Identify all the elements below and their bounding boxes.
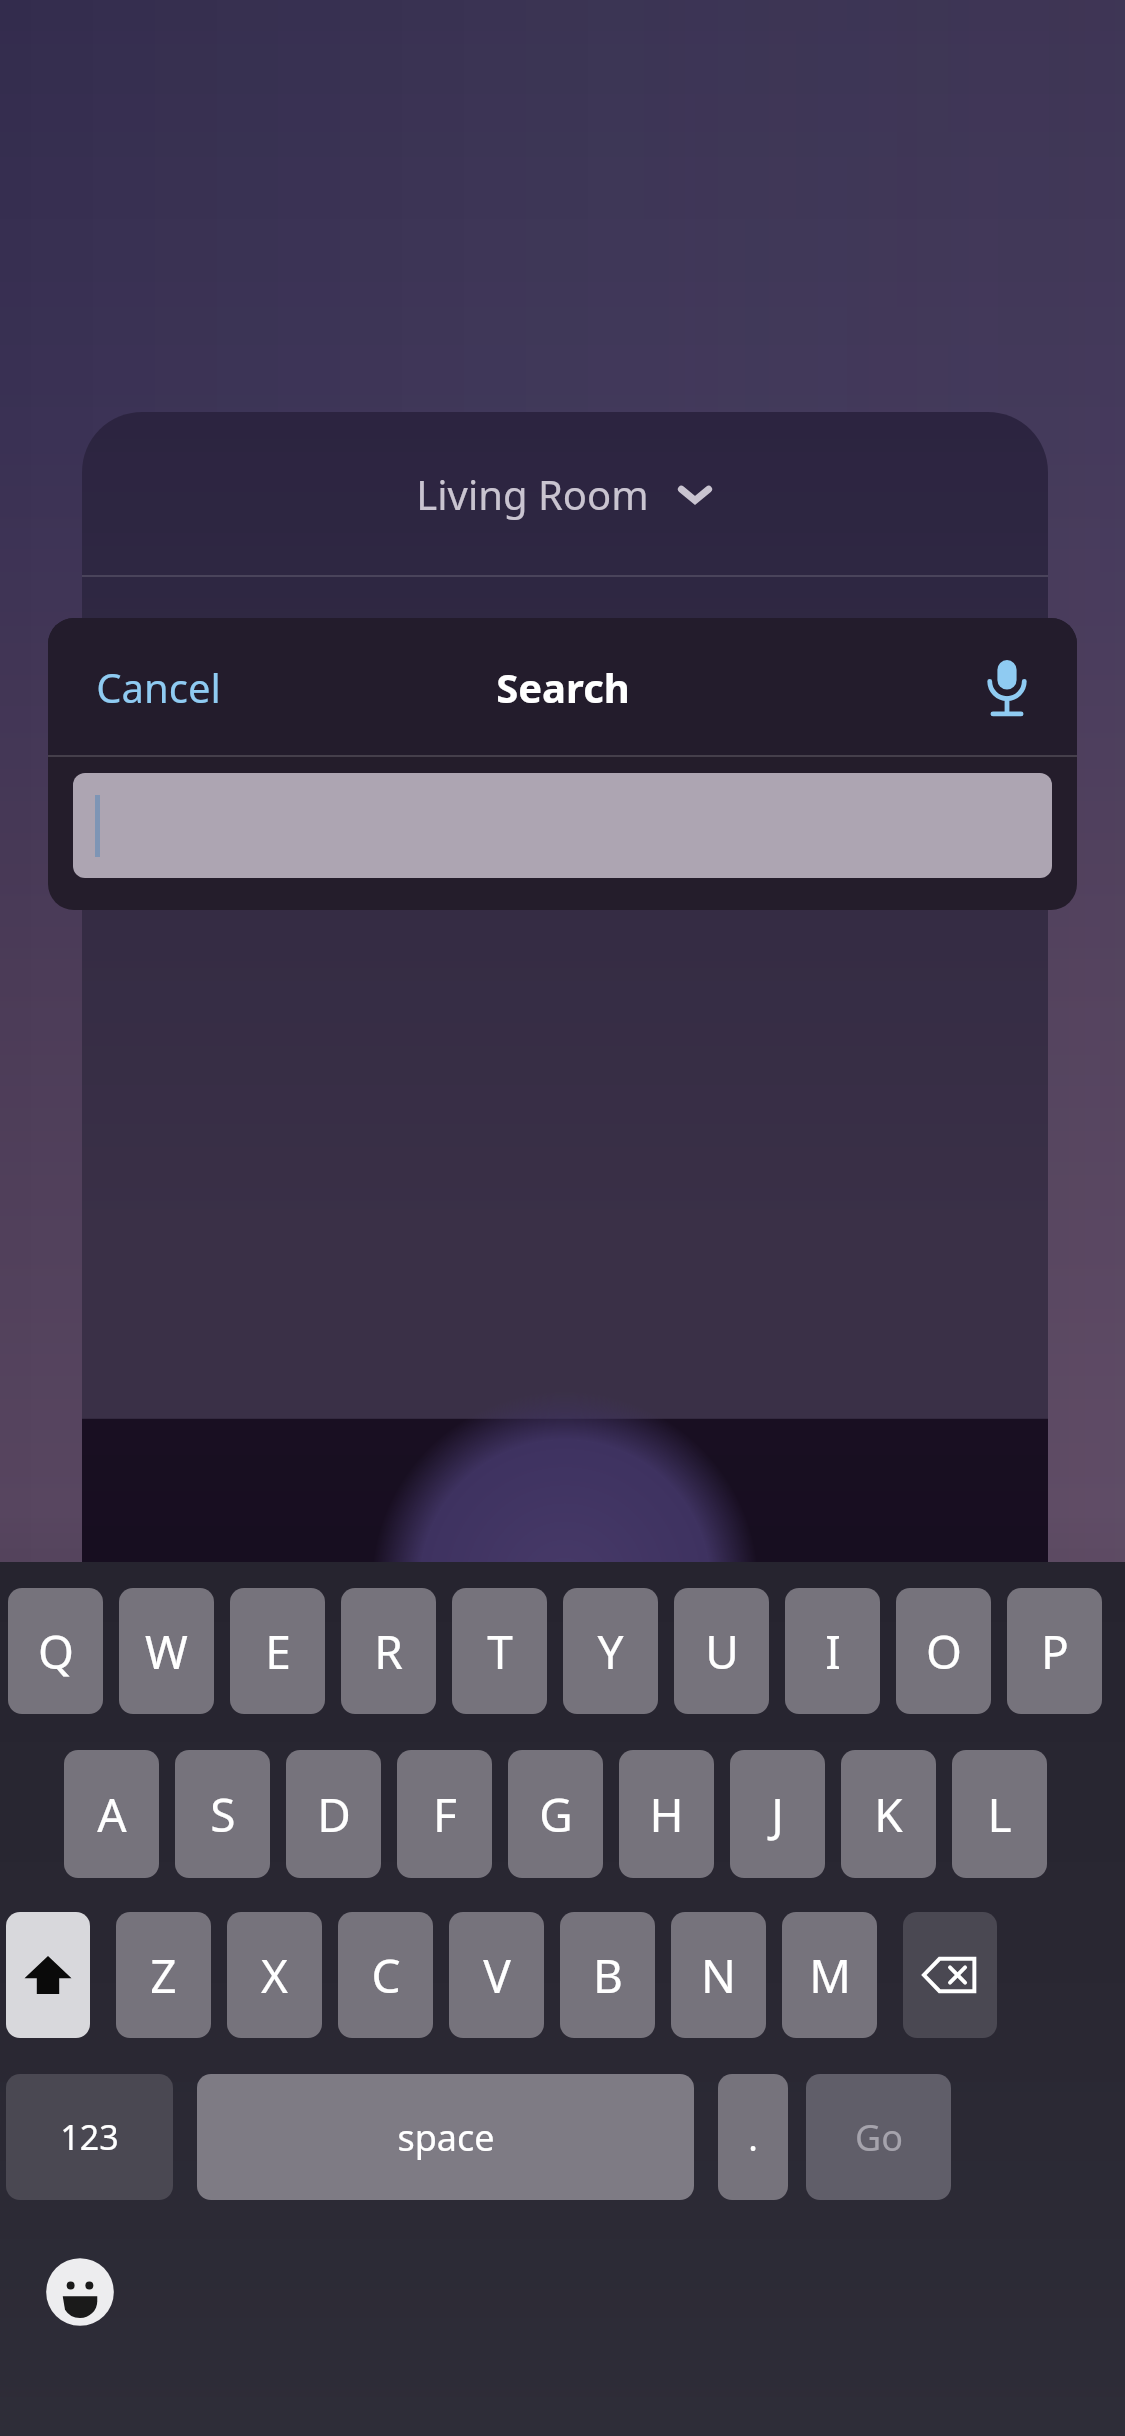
staticText: V	[483, 1944, 511, 2007]
button[interactable]: Y	[563, 1588, 658, 1714]
button[interactable]: Living Room	[82, 412, 1048, 575]
button[interactable]: P	[1007, 1588, 1102, 1714]
button[interactable]: T	[452, 1588, 547, 1714]
button[interactable]: Cancel	[88, 650, 229, 724]
button[interactable]: Voice search	[965, 645, 1049, 729]
staticText: 123	[60, 2114, 119, 2160]
button[interactable]: space	[197, 2074, 694, 2200]
staticText: H	[649, 1783, 684, 1846]
staticText: X	[261, 1944, 288, 2007]
button[interactable]: C	[338, 1912, 433, 2038]
button[interactable]	[73, 773, 1052, 878]
button[interactable]: L	[952, 1750, 1047, 1878]
staticText: C	[371, 1944, 401, 2007]
button[interactable]: D	[286, 1750, 381, 1878]
button[interactable]: Z	[116, 1912, 211, 2038]
staticText: .	[748, 2113, 758, 2162]
button[interactable]: Q	[8, 1588, 103, 1714]
button[interactable]: K	[841, 1750, 936, 1878]
staticText: U	[705, 1620, 739, 1683]
button[interactable]: O	[896, 1588, 991, 1714]
staticText: Cancel	[96, 660, 221, 714]
button[interactable]: B	[560, 1912, 655, 2038]
staticText: J	[771, 1783, 784, 1846]
button[interactable]: N	[671, 1912, 766, 2038]
staticText: T	[487, 1620, 513, 1683]
staticText: Go	[855, 2113, 903, 2162]
staticText: R	[374, 1620, 403, 1683]
staticText: F	[433, 1783, 457, 1846]
button[interactable]: E	[230, 1588, 325, 1714]
button[interactable]: Shift	[6, 1912, 90, 2038]
button[interactable]: Go	[806, 2074, 951, 2200]
button[interactable]: I	[785, 1588, 880, 1714]
button[interactable]: F	[397, 1750, 492, 1878]
staticText: space	[397, 2113, 495, 2162]
button[interactable]: H	[619, 1750, 714, 1878]
staticText: Search	[496, 660, 630, 714]
button[interactable]: R	[341, 1588, 436, 1714]
staticText: E	[265, 1620, 291, 1683]
staticText: S	[210, 1783, 236, 1846]
button[interactable]: M	[782, 1912, 877, 2038]
button[interactable]: Backspace	[903, 1912, 997, 2038]
staticText: G	[539, 1783, 573, 1846]
staticText: Living Room	[416, 467, 649, 521]
staticText: Q	[38, 1620, 74, 1683]
staticText: I	[825, 1620, 841, 1683]
button[interactable]: A	[64, 1750, 159, 1878]
button[interactable]: S	[175, 1750, 270, 1878]
button[interactable]: Emoji keyboard	[42, 2254, 118, 2330]
button[interactable]: W	[119, 1588, 214, 1714]
button[interactable]: G	[508, 1750, 603, 1878]
button[interactable]: X	[227, 1912, 322, 2038]
button[interactable]: V	[449, 1912, 544, 2038]
staticText: M	[809, 1944, 851, 2007]
button[interactable]: .	[718, 2074, 788, 2200]
staticText: L	[987, 1783, 1012, 1846]
staticText: K	[874, 1783, 903, 1846]
staticText: Y	[597, 1620, 624, 1683]
staticText: N	[701, 1944, 736, 2007]
staticText: P	[1041, 1620, 1069, 1683]
staticText: O	[926, 1620, 962, 1683]
button[interactable]: 123	[6, 2074, 173, 2200]
button[interactable]: U	[674, 1588, 769, 1714]
button[interactable]: J	[730, 1750, 825, 1878]
staticText: W	[145, 1620, 188, 1683]
staticText: B	[593, 1944, 623, 2007]
staticText: Z	[150, 1944, 177, 2007]
staticText: D	[317, 1783, 351, 1846]
staticText: A	[97, 1783, 127, 1846]
